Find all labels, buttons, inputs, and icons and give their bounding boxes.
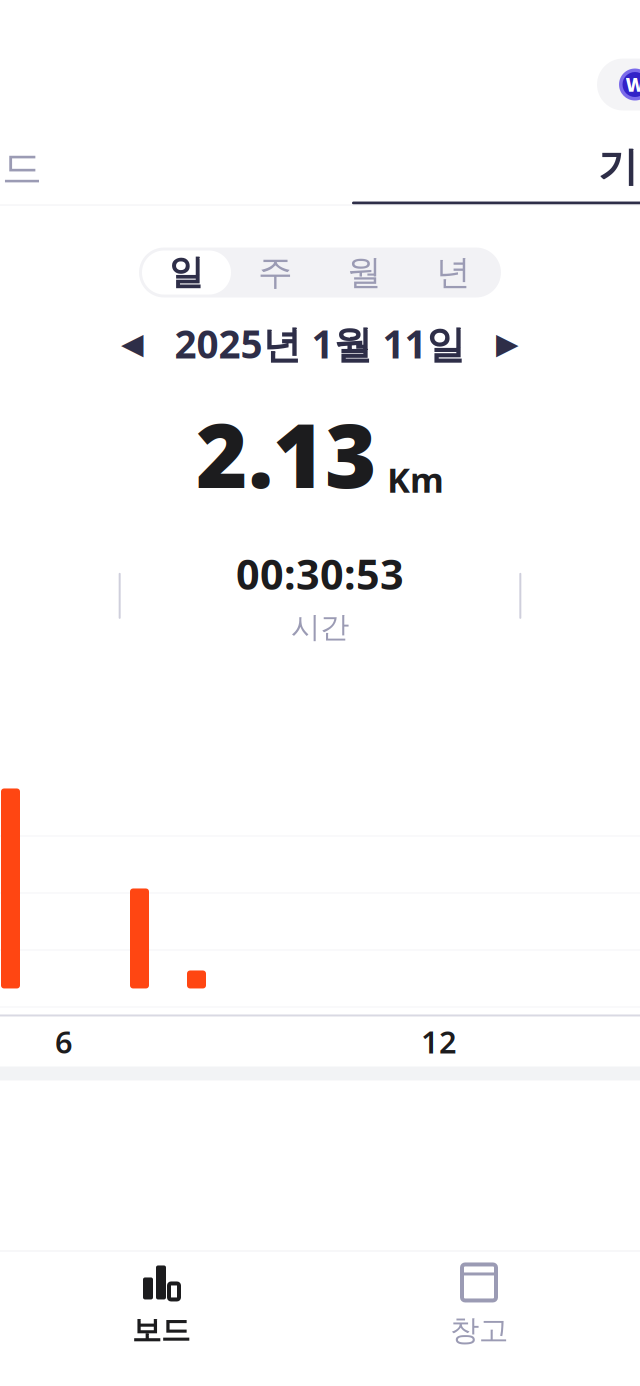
staticText: 시간 [291, 609, 349, 645]
button[interactable]: 년 [409, 250, 498, 294]
button[interactable]: 기록 [320, 132, 640, 204]
staticText: 보드 [132, 1312, 190, 1348]
staticText: ▶ [496, 327, 519, 360]
staticText: W [625, 72, 640, 97]
staticText: 12 [421, 1021, 457, 1062]
button[interactable]: W [597, 58, 640, 110]
button[interactable]: 일 [142, 250, 231, 294]
staticText: 일 [169, 251, 204, 294]
button[interactable]: 다음 날짜 [479, 315, 535, 371]
button[interactable]: 보드 [0, 132, 320, 204]
staticText: 보드 [0, 144, 42, 193]
staticText: 2.13 [196, 395, 377, 512]
button[interactable]: 주 [231, 250, 320, 294]
staticText: 6 [55, 1021, 73, 1062]
staticText: 월 [347, 251, 382, 294]
staticText: Km [387, 456, 444, 502]
button[interactable]: 창고 [320, 1251, 638, 1359]
button[interactable]: 보드 [2, 1251, 320, 1359]
staticText: 년 [436, 251, 471, 294]
staticText: 주 [258, 251, 293, 294]
staticText: 00:30:53 [236, 546, 404, 601]
staticText: 2025년 1월 11일 [174, 318, 465, 369]
button[interactable]: 월 [320, 250, 409, 294]
button[interactable]: 이전 날짜 [104, 315, 160, 371]
staticText: 창고 [450, 1312, 508, 1348]
staticText: ◀ [121, 327, 144, 360]
staticText: 기록 [598, 142, 640, 192]
